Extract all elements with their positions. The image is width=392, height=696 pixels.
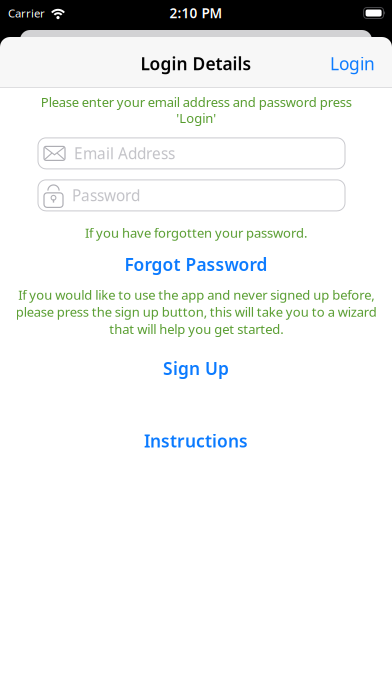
staticText: Instructions (144, 429, 248, 453)
staticText: Carrier (8, 5, 45, 21)
staticText: Sign Up (163, 356, 229, 380)
staticText: Forgot Password (124, 253, 267, 276)
button[interactable]: Instructions (144, 429, 248, 453)
staticText: If you have forgotten your password. (85, 224, 307, 242)
button[interactable]: Email Address (38, 138, 345, 169)
staticText: Password (72, 185, 140, 206)
button[interactable]: Forgot Password (124, 253, 267, 276)
button[interactable]: Password (38, 180, 345, 211)
staticText: Please enter your email address and pass… (40, 94, 351, 126)
staticText: Login Details (140, 52, 251, 75)
button[interactable]: Sign Up (163, 356, 229, 380)
button[interactable]: Login (330, 52, 375, 75)
staticText: Login (330, 52, 375, 75)
staticText: 2:10 PM (169, 4, 222, 22)
staticText: If you would like to use the app and nev… (15, 286, 376, 337)
staticText: Email Address (74, 143, 175, 164)
